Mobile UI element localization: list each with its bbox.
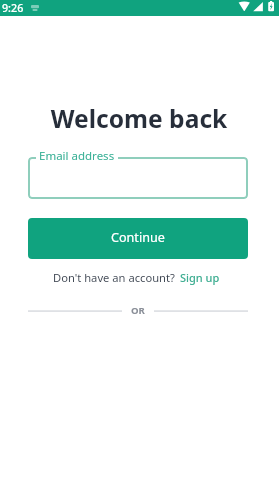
- staticText: Sign up: [180, 270, 220, 285]
- staticText: Continue: [111, 229, 165, 246]
- staticText: Welcome back: [0, 102, 278, 136]
- button[interactable]: Sign up: [180, 270, 220, 285]
- button[interactable]: Continue: [28, 218, 248, 259]
- other: Network and battery status: [237, 0, 279, 16]
- staticText: Don't have an account?: [53, 270, 175, 285]
- button[interactable]: [28, 157, 248, 199]
- staticText: OR: [131, 304, 145, 317]
- staticText: Email address: [39, 148, 115, 164]
- other: Notification: [31, 5, 39, 11]
- staticText: 9:26: [2, 1, 24, 16]
